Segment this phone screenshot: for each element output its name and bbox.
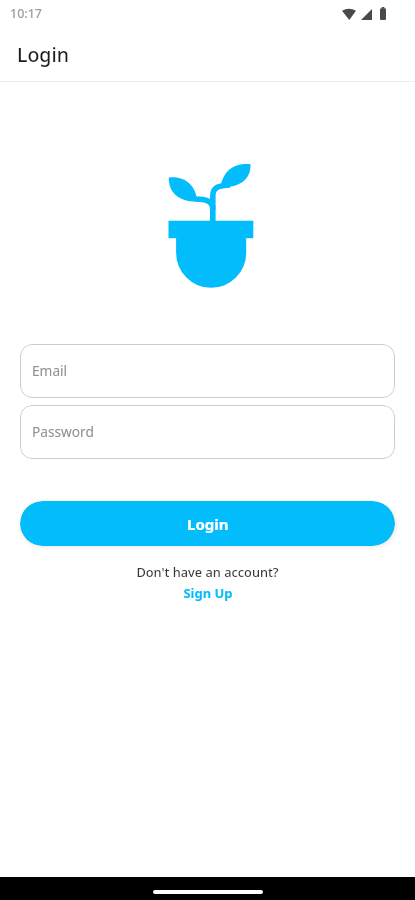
button[interactable]: Password: [20, 405, 395, 459]
staticText: Don't have an account?: [0, 563, 415, 580]
staticText: Password: [32, 422, 94, 441]
button[interactable]: Sign Up: [175, 583, 241, 603]
button[interactable]: Email: [20, 344, 395, 398]
staticText: Login: [187, 514, 229, 534]
button[interactable]: Login: [20, 501, 395, 546]
staticText: Sign Up: [183, 584, 233, 602]
staticText: Email: [32, 361, 68, 380]
staticText: Login: [17, 41, 69, 68]
staticText: 10:17: [10, 5, 43, 22]
